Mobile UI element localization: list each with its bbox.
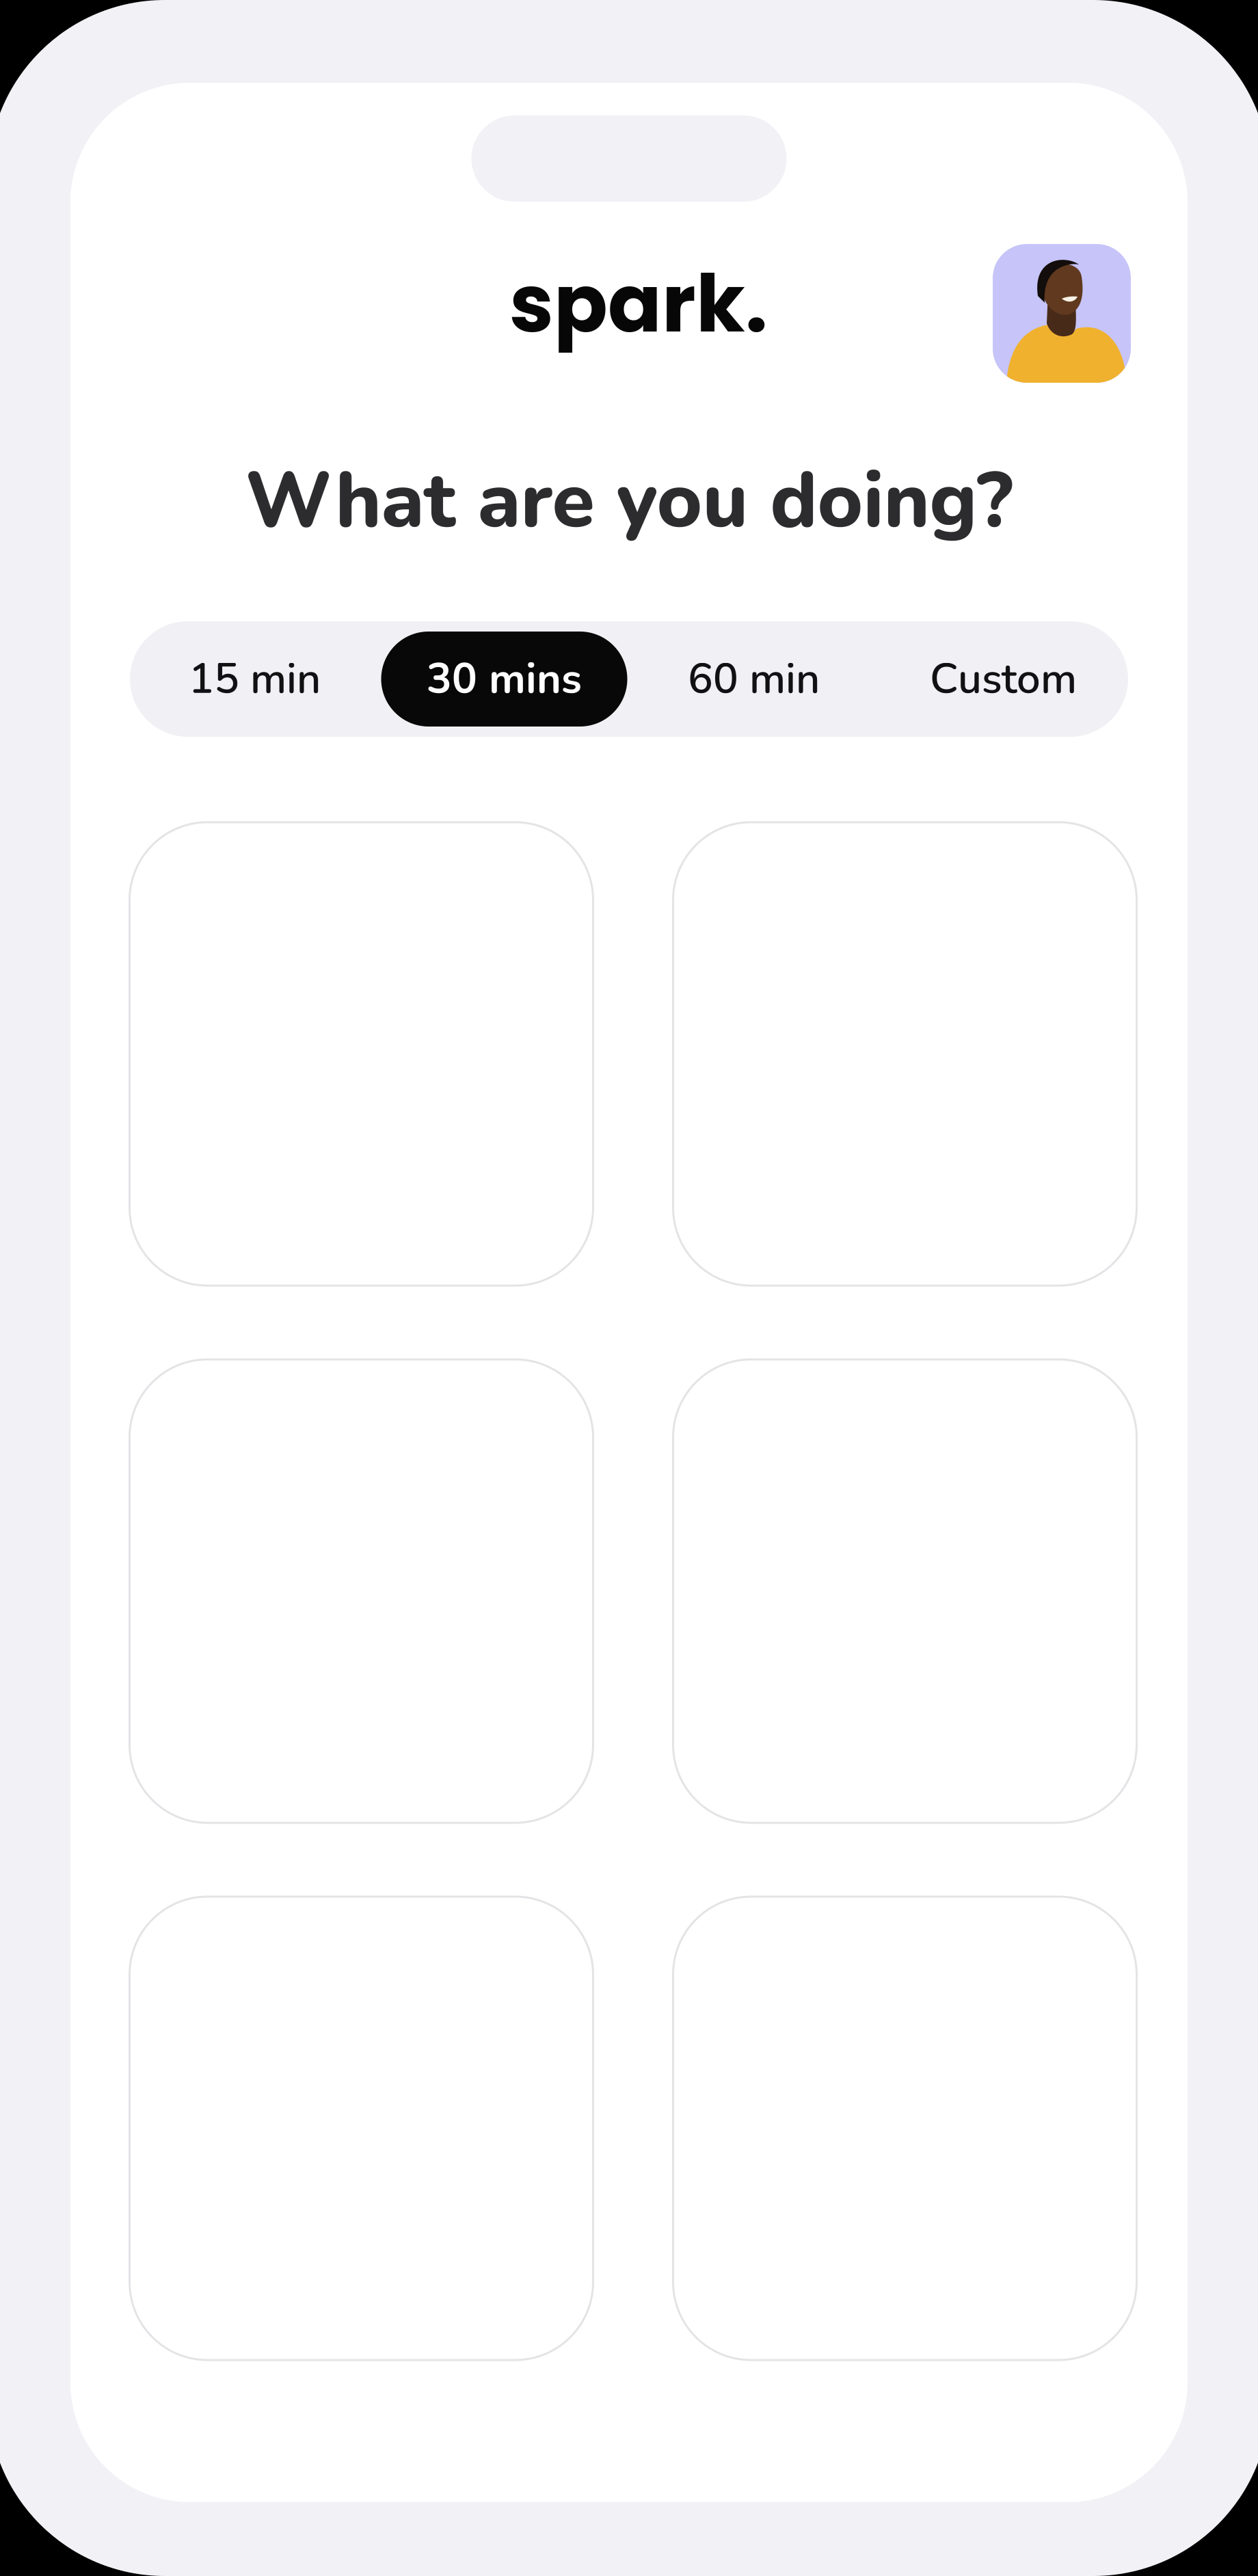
button[interactable]: Custom — [879, 621, 1128, 737]
button[interactable]: Profile — [993, 244, 1131, 383]
staticText: spark. — [509, 248, 768, 359]
staticText: 30 mins — [427, 650, 582, 708]
staticText: What are you doing? — [245, 448, 1013, 554]
button[interactable]: 15 min — [130, 621, 379, 737]
button[interactable]: 30 mins — [379, 621, 629, 737]
staticText: 15 min — [189, 650, 321, 708]
button[interactable]: 60 min — [629, 621, 879, 737]
staticText: Custom — [930, 650, 1077, 708]
staticText: 60 min — [688, 650, 820, 708]
